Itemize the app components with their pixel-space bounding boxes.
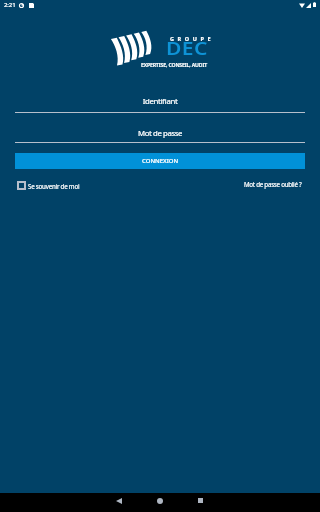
button[interactable]: Back: [99, 493, 139, 512]
button[interactable]: Recent apps: [180, 493, 221, 512]
staticText: CONNEXION: [142, 157, 179, 165]
staticText: EXPERTISE, CONSEIL, AUDIT: [141, 61, 208, 68]
staticText: GROUPE: [170, 35, 215, 42]
button[interactable]: CONNEXION: [15, 153, 305, 169]
button[interactable]: Mot de passe: [15, 126, 305, 143]
staticText: Identifiant: [15, 96, 305, 107]
staticText: Mot de passe: [15, 128, 305, 139]
staticText: DEC: [166, 37, 208, 60]
staticText: 2:21: [4, 1, 16, 9]
button[interactable]: Identifiant: [15, 94, 305, 113]
button[interactable]: Se souvenir de moi: [15, 181, 80, 190]
staticText: Se souvenir de moi: [28, 182, 80, 190]
button[interactable]: Home: [139, 493, 180, 512]
button[interactable]: Mot de passe oublié ?: [244, 180, 302, 188]
